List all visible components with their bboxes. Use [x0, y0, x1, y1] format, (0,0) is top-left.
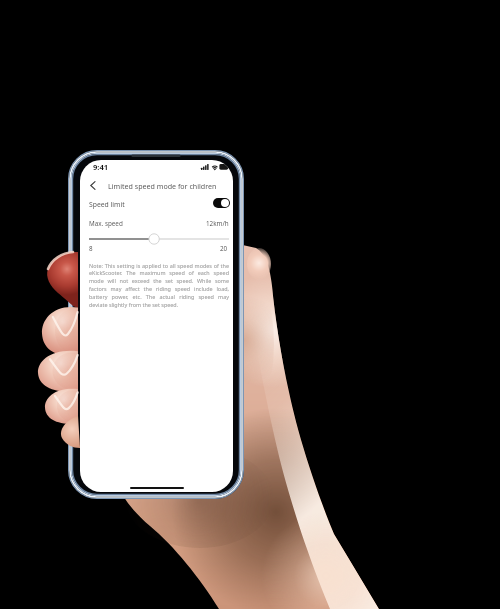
- button[interactable]: Back: [80, 174, 104, 196]
- staticText: Note: This setting is applied to all spe…: [89, 262, 229, 309]
- staticText: Limited speed mode for children: [108, 181, 217, 191]
- button[interactable]: Speed limit on: [213, 198, 230, 208]
- button[interactable]: Max speed slider: [89, 233, 229, 245]
- staticText: 8: [89, 244, 93, 253]
- staticText: Max. speed: [89, 219, 123, 228]
- button[interactable]: Speed limit: [80, 196, 233, 216]
- staticText: 12km/h: [206, 219, 229, 228]
- staticText: 20: [220, 244, 228, 253]
- staticText: 9:41: [93, 162, 109, 172]
- staticText: Speed limit: [89, 200, 125, 209]
